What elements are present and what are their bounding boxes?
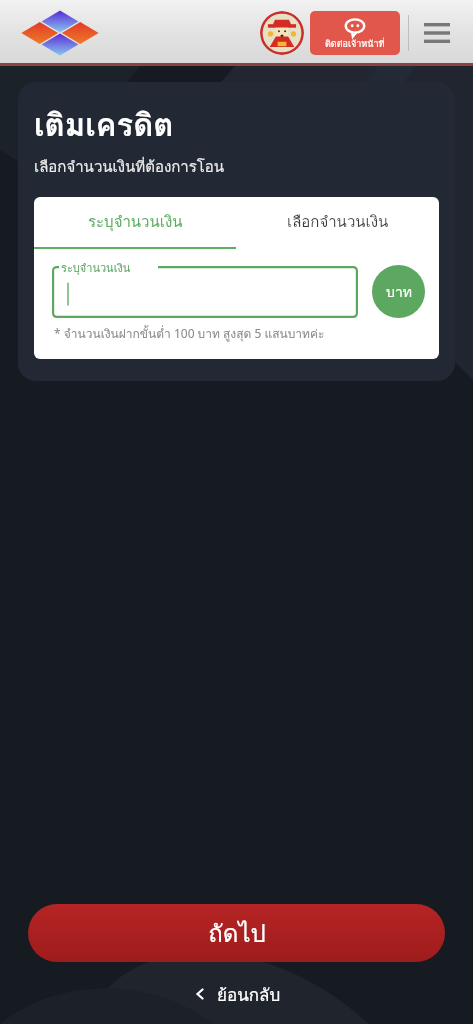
button[interactable]: ระบุจำนวนเงิน bbox=[34, 197, 236, 247]
staticText: ระบุจำนวนเงิน bbox=[88, 210, 183, 234]
button[interactable]: บาท bbox=[372, 265, 425, 318]
button[interactable]: เลือกจำนวนเงิน bbox=[236, 197, 439, 247]
button[interactable]: Menu bbox=[409, 5, 465, 61]
button[interactable]: ถัดไป bbox=[28, 904, 445, 962]
staticText: ติดต่อเจ้าหน้าที่ bbox=[325, 37, 385, 51]
button[interactable]: ระบุจำนวนเงิน bbox=[52, 266, 358, 318]
staticText: เติมเครดิต bbox=[34, 100, 174, 149]
button[interactable]: ย้อนกลับ bbox=[0, 974, 473, 1014]
staticText: เลือกจำนวนเงินที่ต้องการโอน bbox=[34, 155, 225, 179]
staticText: เลือกจำนวนเงิน bbox=[287, 210, 389, 234]
staticText: ย้อนกลับ bbox=[217, 981, 281, 1008]
staticText: ระบุจำนวนเงิน bbox=[61, 259, 131, 276]
staticText: บาท bbox=[386, 281, 412, 303]
button[interactable]: Logo bbox=[14, 9, 106, 57]
staticText: ถัดไป bbox=[208, 914, 266, 952]
staticText: * จำนวนเงินฝากขั้นต่ำ 100 บาท สูงสุด 5 แ… bbox=[54, 324, 325, 343]
button[interactable]: ติดต่อเจ้าหน้าที่ bbox=[310, 11, 400, 55]
button[interactable]: Profile bbox=[260, 11, 304, 55]
